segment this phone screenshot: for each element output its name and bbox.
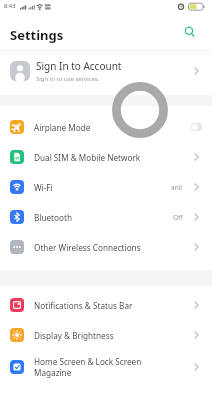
staticText: Display & Brightness: [34, 330, 114, 341]
staticText: Sign in to use services.: [36, 75, 100, 83]
staticText: Sign In to Account: [36, 59, 122, 73]
staticText: Off: [173, 213, 183, 222]
staticText: Wi-Fi: [34, 182, 53, 193]
staticText: Dual SIM & Mobile Network: [34, 152, 141, 163]
staticText: Home Screen & Lock Screen: [34, 356, 142, 367]
staticText: Other Wireless Connections: [34, 242, 141, 253]
staticText: Settings: [10, 26, 64, 44]
staticText: Airplane Mode: [34, 122, 91, 133]
staticText: Magazine: [34, 367, 72, 378]
staticText: Notifications & Status Bar: [34, 300, 133, 311]
staticText: 8:43: [4, 2, 16, 10]
staticText: Bluetooth: [34, 212, 72, 223]
staticText: anil: [171, 183, 183, 192]
